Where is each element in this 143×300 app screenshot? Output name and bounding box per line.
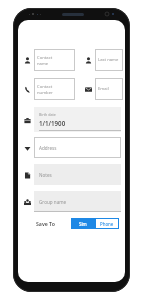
button[interactable]: Phone [95,218,119,229]
button[interactable]: Birth date [34,107,121,132]
staticText: Save To [36,220,55,227]
staticText: Contact number [37,84,53,95]
staticText: Birth date [39,112,56,117]
button[interactable]: Email [95,78,123,100]
other: Group icon [20,195,34,209]
button[interactable]: Contact name [34,49,75,71]
button[interactable]: Notes [34,164,121,185]
button[interactable]: Group name [34,191,121,212]
staticText: Contact name [37,55,53,66]
button[interactable]: Last name [95,49,123,71]
button[interactable]: Sim [71,218,95,229]
other: Email icon [81,82,95,96]
staticText: Email [98,86,109,92]
other: Birth date icon [20,113,34,127]
staticText: Group name [39,199,67,205]
staticText: Phone [100,221,114,227]
button[interactable]: Address [34,137,121,158]
staticText: Sim [79,221,87,227]
other: Notes icon [20,168,34,182]
staticText: Address [39,145,57,151]
staticText: Last name [98,57,119,63]
staticText: Notes [39,172,52,178]
staticText: 1/1/1900 [39,119,66,127]
other: Address icon [20,141,34,155]
button[interactable]: Contact number [34,78,75,100]
other: Contact name icon [20,53,34,67]
other: Phone icon [20,82,34,96]
other: Last name icon [81,53,95,67]
